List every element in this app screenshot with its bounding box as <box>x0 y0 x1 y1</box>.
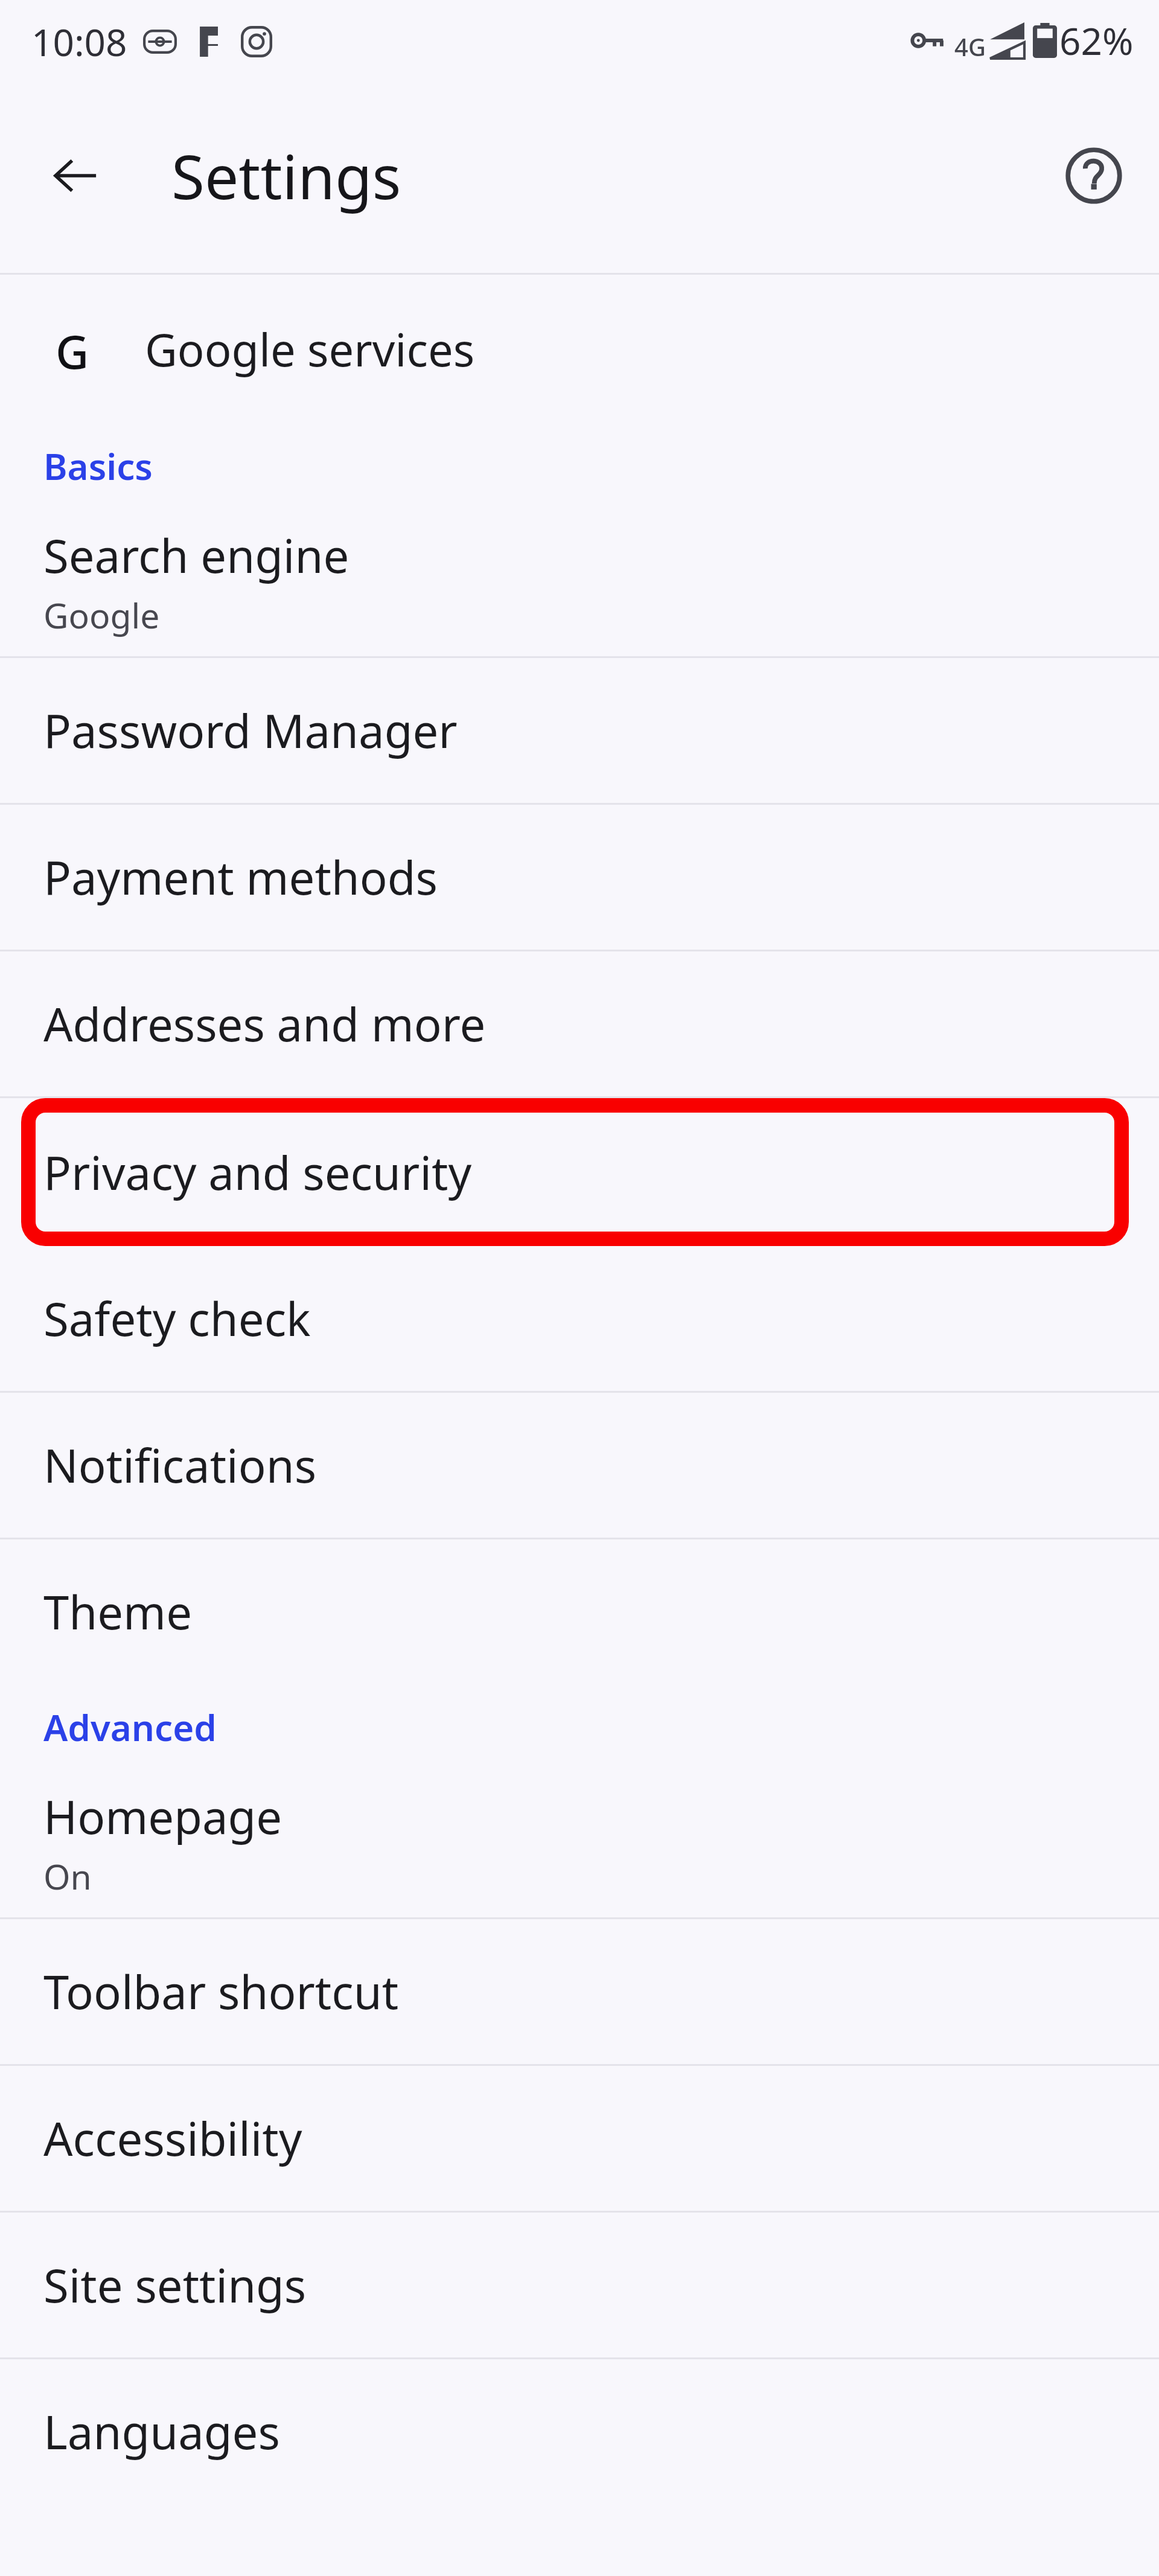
button[interactable]: Help <box>1052 133 1136 218</box>
button[interactable]: Search engine <box>0 507 1159 656</box>
button[interactable]: Accessibility <box>0 2066 1159 2211</box>
staticText: Theme <box>43 1580 193 1643</box>
staticText: Payment methods <box>43 846 438 909</box>
staticText: Google services <box>145 319 475 380</box>
staticText: Notifications <box>43 1434 317 1497</box>
staticText: Homepage <box>43 1785 283 1848</box>
button[interactable]: Homepage <box>0 1768 1159 1917</box>
button[interactable]: Payment methods <box>0 805 1159 950</box>
staticText: 10:08 <box>31 16 127 67</box>
button[interactable]: Password Manager <box>0 658 1159 803</box>
staticText: Safety check <box>43 1287 311 1350</box>
staticText: Password Manager <box>43 699 458 762</box>
button[interactable]: Privacy and security <box>0 1098 1159 1246</box>
staticText: Advanced <box>43 1702 217 1752</box>
button[interactable]: Safety check <box>0 1246 1159 1391</box>
button[interactable]: Languages <box>0 2359 1159 2504</box>
staticText: Site settings <box>43 2254 307 2316</box>
staticText: Privacy and security <box>43 1141 472 1204</box>
button[interactable]: Toolbar shortcut <box>0 1919 1159 2064</box>
staticText: Settings <box>171 135 401 217</box>
button[interactable]: Site settings <box>0 2213 1159 2357</box>
staticText: Addresses and more <box>43 992 486 1055</box>
staticText: Toolbar shortcut <box>43 1960 399 2023</box>
button[interactable]: Theme <box>0 1539 1159 1684</box>
staticText: Accessibility <box>43 2107 302 2170</box>
button[interactable]: Notifications <box>0 1393 1159 1538</box>
staticText: Search engine <box>43 524 350 587</box>
staticText: 4G <box>954 30 986 63</box>
button[interactable]: Back <box>34 135 116 217</box>
staticText: Languages <box>43 2400 280 2463</box>
staticText: Google <box>43 592 160 639</box>
staticText: On <box>43 1853 92 1900</box>
staticText: 62% <box>1059 15 1134 66</box>
button[interactable]: Addresses and more <box>0 951 1159 1096</box>
staticText: G <box>56 320 89 378</box>
button[interactable]: G <box>0 275 1159 423</box>
staticText: Basics <box>43 441 153 491</box>
